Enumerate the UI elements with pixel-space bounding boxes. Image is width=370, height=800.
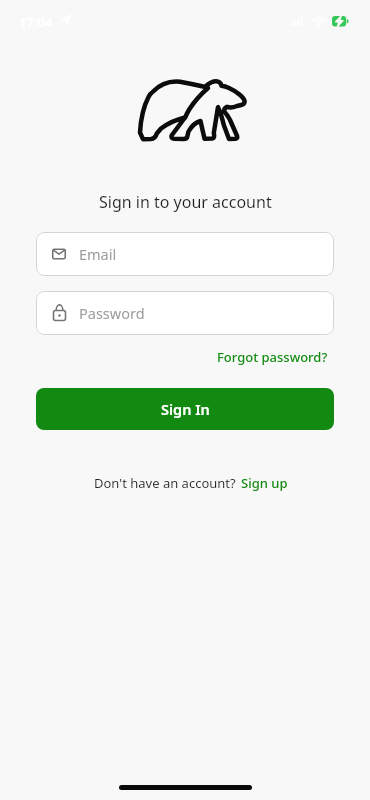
staticText: Sign up — [241, 474, 288, 492]
staticText: Don't have an account? — [94, 474, 236, 492]
staticText: Email — [79, 244, 117, 264]
staticText: Sign in to your account — [99, 191, 272, 213]
staticText: Sign In — [161, 399, 210, 419]
staticText: Forgot password? — [217, 348, 328, 366]
staticText: Password — [79, 303, 145, 323]
button[interactable]: Password — [36, 291, 334, 335]
button[interactable]: Email — [36, 232, 334, 276]
button[interactable]: Forgot password? — [217, 348, 328, 366]
button[interactable]: Sign up — [241, 474, 288, 492]
button[interactable]: Sign In — [36, 388, 334, 430]
